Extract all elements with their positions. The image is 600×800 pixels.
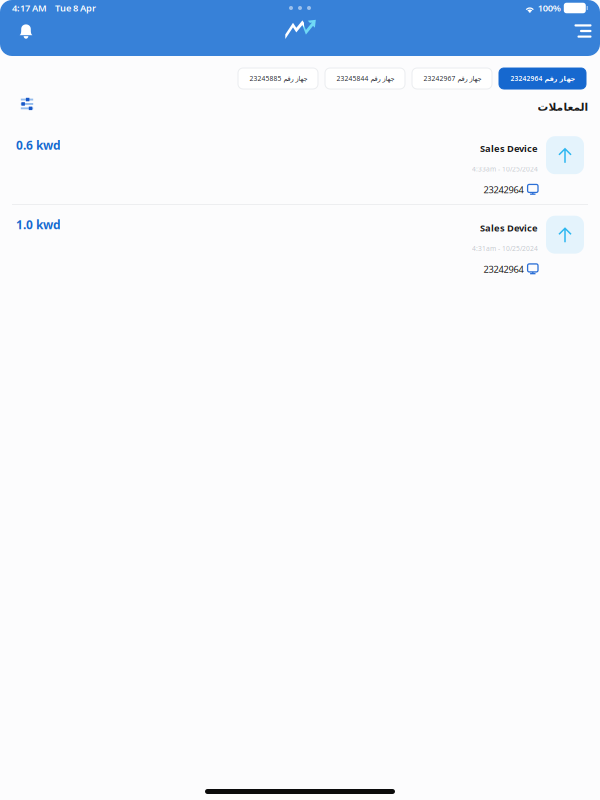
button[interactable]: 1.0 kwd: [0, 205, 600, 289]
button[interactable]: جهاز رقم 23242967: [412, 68, 492, 89]
staticText: المعاملات: [537, 101, 588, 113]
staticText: 23242964: [484, 183, 524, 196]
staticText: جهاز رقم 23242967: [423, 74, 481, 83]
staticText: 100%: [538, 2, 561, 14]
button[interactable]: Filter: [10, 97, 38, 117]
button[interactable]: Notifications: [10, 16, 42, 46]
staticText: جهاز رقم 23242964: [510, 74, 575, 83]
staticText: 23242964: [484, 263, 524, 275]
staticText: 4:17 AM: [12, 2, 47, 14]
button[interactable]: جهاز رقم 23242964: [499, 68, 586, 89]
staticText: 1.0 kwd: [16, 217, 61, 233]
staticText: جهاز رقم 23245844: [336, 74, 394, 83]
staticText: Sales Device: [480, 222, 538, 234]
staticText: Sales Device: [480, 142, 538, 155]
staticText: جهاز رقم 23245885: [249, 74, 307, 83]
staticText: 4:31am - 10/25/2024: [472, 244, 538, 253]
button[interactable]: جهاز رقم 23245844: [325, 68, 405, 89]
button[interactable]: Menu: [568, 16, 598, 46]
button[interactable]: جهاز رقم 23245885: [238, 68, 318, 89]
staticText: 4:33am - 10/25/2024: [472, 165, 538, 173]
button[interactable]: 0.6 kwd: [0, 117, 600, 204]
staticText: Tue 8 Apr: [55, 2, 96, 14]
staticText: 0.6 kwd: [16, 137, 61, 153]
